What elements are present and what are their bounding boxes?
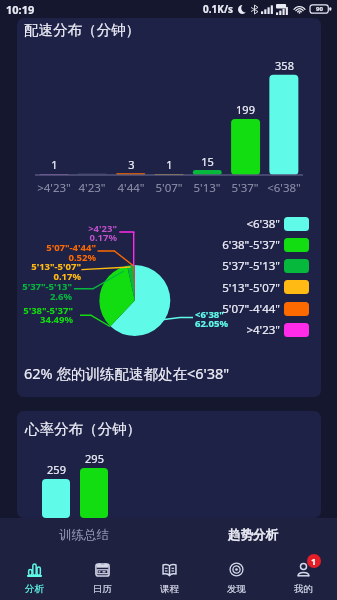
staticText: 6'38"-5'37" — [222, 237, 280, 253]
staticText: 5'38"-5'37" — [23, 304, 73, 317]
staticText: 课程 — [160, 583, 179, 595]
staticText: 心率分布（分钟） — [25, 420, 141, 438]
staticText: 34.49% — [40, 313, 73, 326]
staticText: 90 — [316, 5, 323, 13]
staticText: 5'37" — [231, 180, 259, 196]
staticText: 分析 — [25, 583, 44, 595]
button[interactable]: 趋势分析 — [168, 518, 337, 552]
staticText: 295 — [85, 451, 104, 466]
staticText: 5'07"-4'44" — [46, 241, 96, 254]
button[interactable]: 日历 — [68, 552, 136, 600]
staticText: 5'13"-5'07" — [31, 260, 81, 273]
staticText: <6'38" — [195, 308, 224, 321]
staticText: 5'37"-5'13" — [22, 280, 72, 293]
button[interactable]: 发现 — [203, 552, 270, 600]
staticText: >4'23" — [88, 222, 117, 235]
staticText: 1 — [51, 157, 58, 172]
staticText: 我的 — [294, 583, 313, 595]
staticText: 训练总结 — [59, 527, 109, 543]
staticText: 0.1K/s — [203, 2, 234, 16]
staticText: 发现 — [227, 583, 246, 595]
staticText: 5'07"-4'44" — [222, 301, 280, 317]
staticText: 3 — [128, 157, 135, 172]
staticText: 259 — [47, 462, 66, 477]
button[interactable]: 课程 — [136, 552, 203, 600]
staticText: 趋势分析 — [228, 527, 278, 543]
staticText: 0.52% — [68, 251, 96, 264]
staticText: 5'13"-5'07" — [222, 280, 280, 296]
staticText: <6'38" — [246, 216, 280, 232]
staticText: 199 — [236, 102, 255, 117]
staticText: 日历 — [93, 583, 112, 595]
staticText: 配速分布（分钟） — [24, 21, 140, 39]
staticText: 358 — [275, 58, 294, 73]
staticText: 4'44" — [117, 180, 145, 196]
staticText: 5'07" — [155, 180, 183, 196]
staticText: <6'38" — [267, 180, 301, 196]
button[interactable]: 训练总结 — [0, 518, 168, 552]
staticText: 0.17% — [53, 270, 81, 283]
button[interactable]: 分析 — [0, 552, 68, 600]
staticText: 5'13" — [193, 180, 221, 196]
staticText: 0.17% — [89, 231, 117, 244]
staticText: 2.6% — [49, 290, 72, 303]
staticText: 4'23" — [78, 180, 106, 196]
staticText: 62% 您的训练配速都处在<6'38" — [24, 363, 230, 383]
button[interactable]: 我的 — [270, 552, 337, 600]
staticText: >4'23" — [37, 180, 71, 196]
staticText: 15 — [201, 154, 214, 169]
staticText: 5'37"-5'13" — [222, 258, 280, 274]
staticText: 1 — [311, 555, 317, 567]
staticText: 1 — [166, 157, 173, 172]
staticText: 62.05% — [195, 317, 228, 330]
staticText: 10:19 — [6, 2, 35, 17]
staticText: >4'23" — [246, 322, 280, 338]
